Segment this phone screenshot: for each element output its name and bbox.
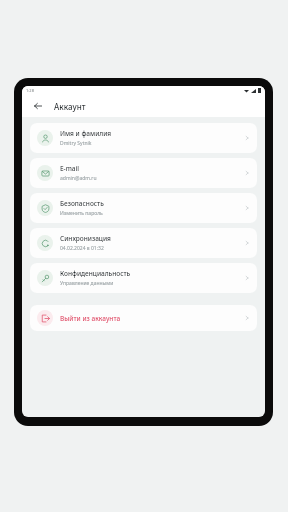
- staticText: Управление данными: [60, 280, 114, 287]
- button[interactable]: Выйти из аккаунта: [30, 305, 257, 331]
- staticText: Выйти из аккаунта: [60, 314, 244, 323]
- staticText: Аккаунт: [54, 101, 86, 112]
- button[interactable]: Имя и фамилия: [30, 123, 257, 153]
- staticText: 1:28: [26, 88, 34, 93]
- staticText: Имя и фамилия: [60, 129, 112, 138]
- staticText: 04.02.2024 в 01:32: [60, 245, 104, 252]
- button[interactable]: Безопасность: [30, 193, 257, 223]
- staticText: admin@adm.ru: [60, 175, 97, 182]
- staticText: Конфиденциальность: [60, 269, 131, 278]
- button[interactable]: Конфиденциальность: [30, 263, 257, 293]
- staticText: Dmitry Sytnik: [60, 140, 92, 147]
- staticText: Синхронизация: [60, 234, 111, 243]
- staticText: Безопасность: [60, 199, 104, 208]
- staticText: Изменить пароль: [60, 210, 103, 217]
- button[interactable]: Back: [31, 99, 45, 113]
- button[interactable]: Синхронизация: [30, 228, 257, 258]
- staticText: E-mail: [60, 164, 80, 173]
- button[interactable]: E-mail: [30, 158, 257, 188]
